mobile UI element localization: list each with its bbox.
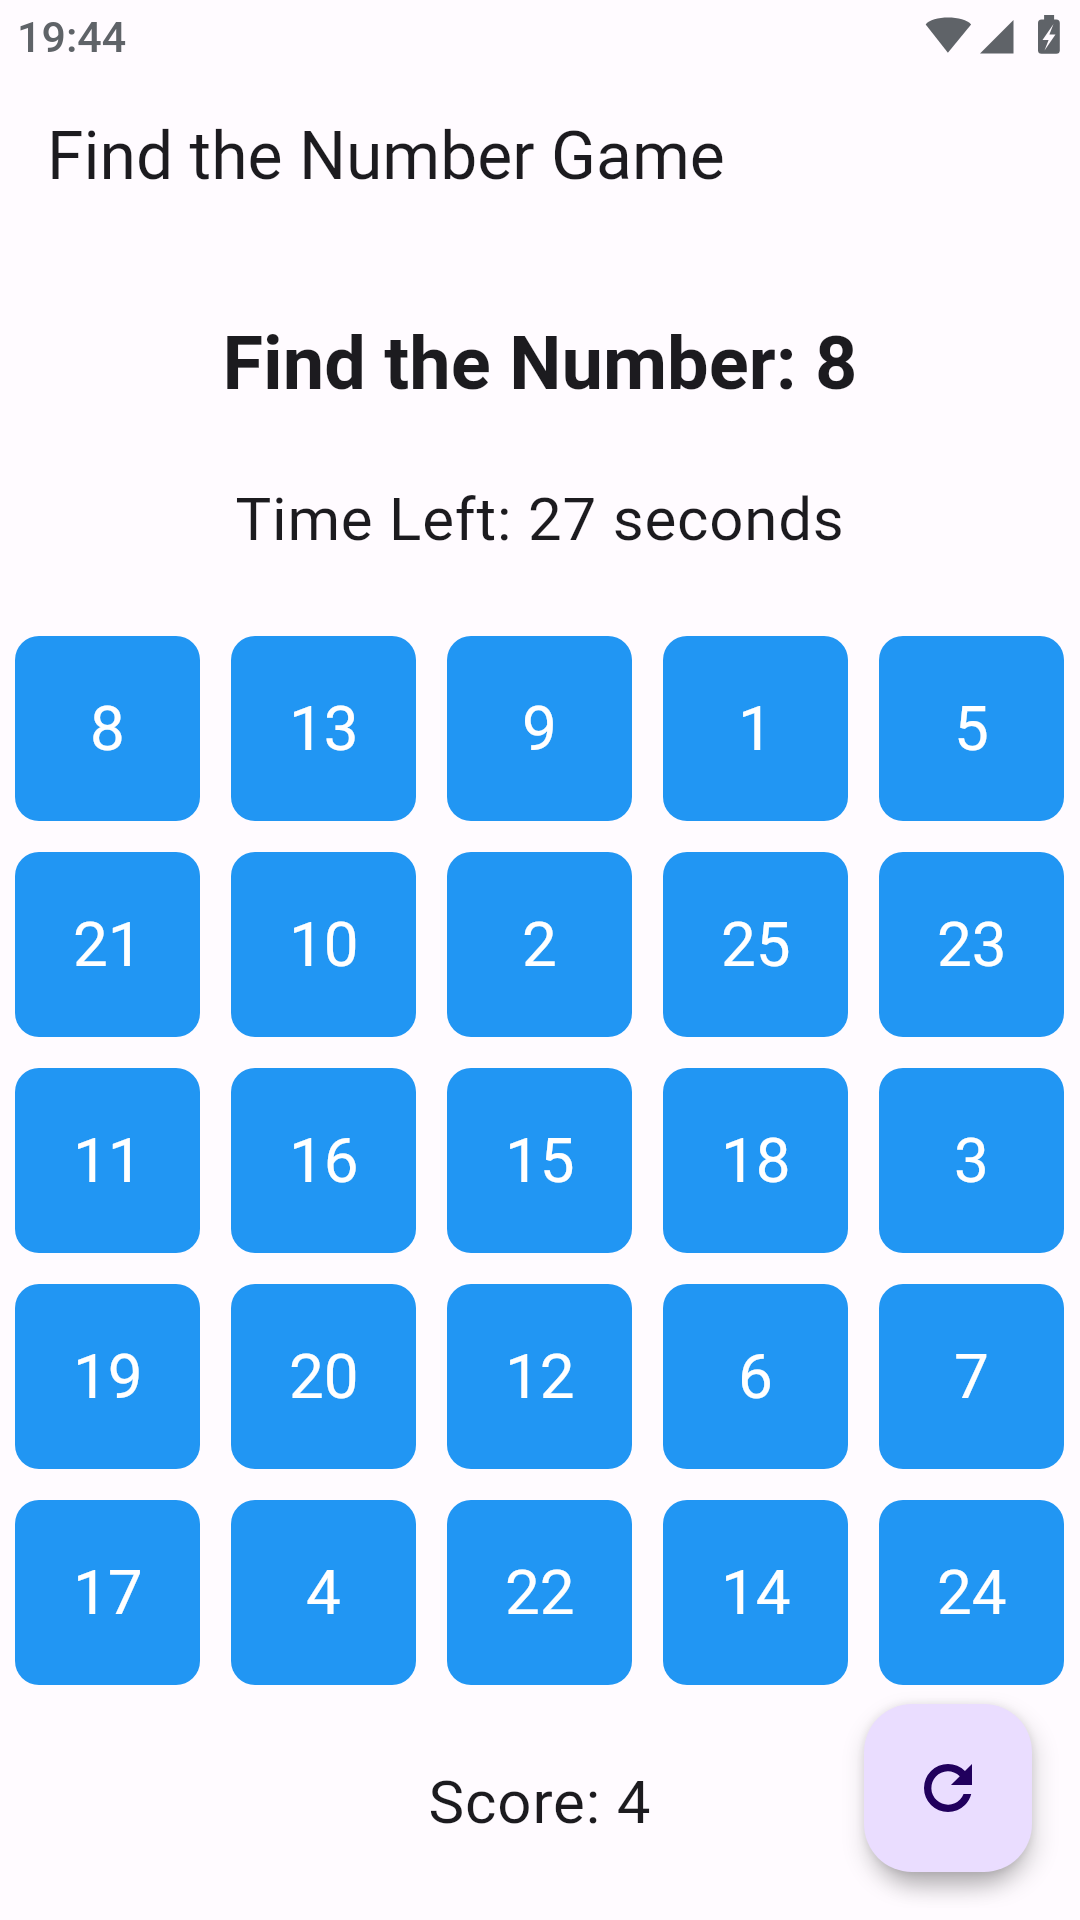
button[interactable]: 21 [15,852,200,1037]
staticText: 24 [937,1556,1007,1629]
button[interactable]: 23 [879,852,1064,1037]
staticText: 13 [289,692,359,765]
button[interactable]: 11 [15,1068,200,1253]
staticText: 1 [738,692,773,765]
button[interactable]: 19 [15,1284,200,1469]
staticText: 5 [954,692,989,765]
staticText: 2 [522,908,557,981]
staticText: 23 [937,908,1007,981]
staticText: 20 [289,1340,359,1413]
staticText: 17 [73,1556,143,1629]
button[interactable]: 8 [15,636,200,821]
button[interactable]: 5 [879,636,1064,821]
button[interactable]: 15 [447,1068,632,1253]
staticText: 7 [954,1340,989,1413]
staticText: 21 [73,908,143,981]
button[interactable]: 4 [231,1500,416,1685]
button[interactable]: 3 [879,1068,1064,1253]
button[interactable]: 2 [447,852,632,1037]
staticText: 11 [73,1124,143,1197]
staticText: 15 [505,1124,575,1197]
staticText: Time Left: 27 seconds [0,484,1080,554]
staticText: Find the Number: 8 [0,320,1080,407]
staticText: 14 [721,1556,791,1629]
staticText: 8 [90,692,125,765]
staticText: 9 [522,692,557,765]
button[interactable]: 25 [663,852,848,1037]
button[interactable]: 1 [663,636,848,821]
button[interactable]: 20 [231,1284,416,1469]
button[interactable]: 6 [663,1284,848,1469]
button[interactable]: 16 [231,1068,416,1253]
staticText: 19:44 [17,12,127,62]
staticText: Find the Number Game [47,118,725,195]
staticText: 6 [738,1340,773,1413]
staticText: 10 [289,908,359,981]
button[interactable]: 17 [15,1500,200,1685]
staticText: 22 [505,1556,575,1629]
staticText: 16 [289,1124,359,1197]
button[interactable]: 9 [447,636,632,821]
button[interactable]: 10 [231,852,416,1037]
staticText: 19 [73,1340,143,1413]
button[interactable]: Restart game [864,1704,1032,1872]
button[interactable]: 13 [231,636,416,821]
button[interactable]: 12 [447,1284,632,1469]
staticText: 4 [306,1556,341,1629]
button[interactable]: 22 [447,1500,632,1685]
button[interactable]: 18 [663,1068,848,1253]
button[interactable]: 14 [663,1500,848,1685]
staticText: 12 [505,1340,575,1413]
staticText: Score: 4 [0,1767,1080,1837]
staticText: 3 [954,1124,989,1197]
button[interactable]: 24 [879,1500,1064,1685]
staticText: 18 [721,1124,791,1197]
staticText: 25 [721,908,791,981]
button[interactable]: 7 [879,1284,1064,1469]
